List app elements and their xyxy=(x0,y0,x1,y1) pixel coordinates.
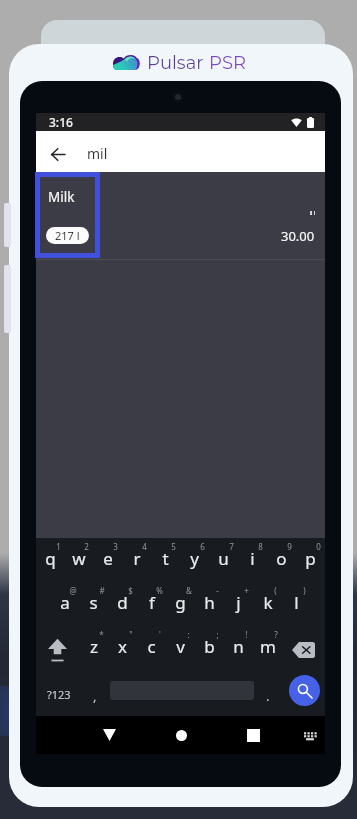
button[interactable]: 1 xyxy=(36,540,64,584)
staticText: n xyxy=(233,635,244,658)
button[interactable]: + xyxy=(224,584,253,628)
staticText: ( xyxy=(274,585,277,596)
staticText: k xyxy=(263,591,273,614)
staticText: u xyxy=(218,547,229,570)
button[interactable]: 5 xyxy=(151,540,180,584)
button[interactable]: % xyxy=(137,584,166,628)
staticText: 5 xyxy=(171,541,176,552)
button[interactable]: 4 xyxy=(122,540,151,584)
staticText: ) xyxy=(303,585,306,596)
staticText: mil xyxy=(87,144,108,163)
staticText: w xyxy=(72,547,86,570)
button[interactable]: Back xyxy=(47,143,69,165)
staticText: g xyxy=(175,591,186,614)
staticText: t xyxy=(162,547,169,570)
button[interactable]: ? xyxy=(253,628,282,672)
staticText: j xyxy=(236,591,241,614)
staticText: b xyxy=(204,635,215,658)
staticText: 6 xyxy=(200,541,205,552)
button[interactable]: ! xyxy=(224,628,253,672)
staticText: 3:16 xyxy=(49,114,73,130)
button[interactable]: 8 xyxy=(238,540,267,584)
button[interactable]: ) xyxy=(282,584,311,628)
staticText: q xyxy=(45,547,56,570)
staticText: Pulsar xyxy=(147,52,204,74)
staticText: ; xyxy=(216,629,219,640)
button[interactable]: & xyxy=(166,584,195,628)
button[interactable]: 7 xyxy=(209,540,238,584)
button[interactable]: Home xyxy=(168,722,194,748)
staticText: : xyxy=(187,629,190,640)
staticText: 3 xyxy=(113,541,118,552)
staticText: . xyxy=(266,687,270,705)
button[interactable]: 2 xyxy=(64,540,93,584)
button[interactable]: * xyxy=(79,628,108,672)
button[interactable]: Shift xyxy=(36,628,79,672)
staticText: 1 xyxy=(56,541,61,552)
button[interactable]: 9 xyxy=(267,540,296,584)
staticText: 4 xyxy=(142,541,147,552)
staticText: y xyxy=(190,547,199,570)
staticText: o xyxy=(276,547,287,570)
staticText: h xyxy=(204,591,215,614)
staticText: s xyxy=(89,591,98,614)
staticText: p xyxy=(305,547,316,570)
staticText: @ xyxy=(69,585,77,596)
staticText: x xyxy=(118,635,127,658)
staticText: 217 l xyxy=(55,228,80,243)
button[interactable]: $ xyxy=(108,584,137,628)
staticText: $ xyxy=(128,585,133,596)
button[interactable]: Search xyxy=(289,675,320,706)
staticText: ?123 xyxy=(47,687,71,702)
staticText: % xyxy=(156,585,163,596)
staticText: - xyxy=(216,585,219,596)
button[interactable]: @ xyxy=(50,584,79,628)
staticText: 7 xyxy=(229,541,234,552)
button[interactable]: Switch keyboard xyxy=(297,722,323,748)
staticText: # xyxy=(99,585,105,596)
staticText: e xyxy=(103,547,113,570)
staticText: f xyxy=(149,591,155,614)
staticText: ' xyxy=(159,629,161,640)
button[interactable]: Delete xyxy=(282,628,325,672)
staticText: v xyxy=(176,635,185,658)
button[interactable]: : xyxy=(166,628,195,672)
staticText: + xyxy=(244,585,249,596)
staticText: i xyxy=(250,547,255,570)
button[interactable]: 0 xyxy=(296,540,325,584)
staticText: m xyxy=(260,635,276,658)
staticText: PSR xyxy=(209,52,247,74)
staticText: 30.00 xyxy=(281,227,315,245)
button[interactable]: . xyxy=(254,672,281,716)
button[interactable]: - xyxy=(195,584,224,628)
button[interactable]: Milk xyxy=(40,177,95,253)
button[interactable]: ( xyxy=(253,584,282,628)
staticText: r xyxy=(133,547,141,570)
staticText: l xyxy=(294,591,299,614)
staticText: z xyxy=(90,635,98,658)
staticText: 2 xyxy=(84,541,89,552)
button[interactable]: ; xyxy=(195,628,224,672)
button[interactable]: 3 xyxy=(93,540,122,584)
staticText: 8 xyxy=(258,541,263,552)
button[interactable]: ' xyxy=(137,628,166,672)
staticText: ! xyxy=(245,629,248,640)
button[interactable]: , xyxy=(80,672,109,716)
button[interactable]: 6 xyxy=(180,540,209,584)
button[interactable]: Back xyxy=(36,131,325,172)
staticText: " xyxy=(129,629,133,640)
button[interactable]: ?123 xyxy=(37,672,81,716)
button[interactable]: " xyxy=(108,628,137,672)
button[interactable]: # xyxy=(79,584,108,628)
staticText: 0 xyxy=(316,541,321,552)
button[interactable]: Back xyxy=(96,722,122,748)
staticText: 9 xyxy=(287,541,292,552)
staticText: c xyxy=(147,635,156,658)
staticText: * xyxy=(99,629,104,640)
staticText: Milk xyxy=(48,188,75,206)
staticText: ? xyxy=(274,629,278,640)
button[interactable]: Recent apps xyxy=(240,722,266,748)
staticText: & xyxy=(186,585,192,596)
staticText: , xyxy=(93,687,97,705)
